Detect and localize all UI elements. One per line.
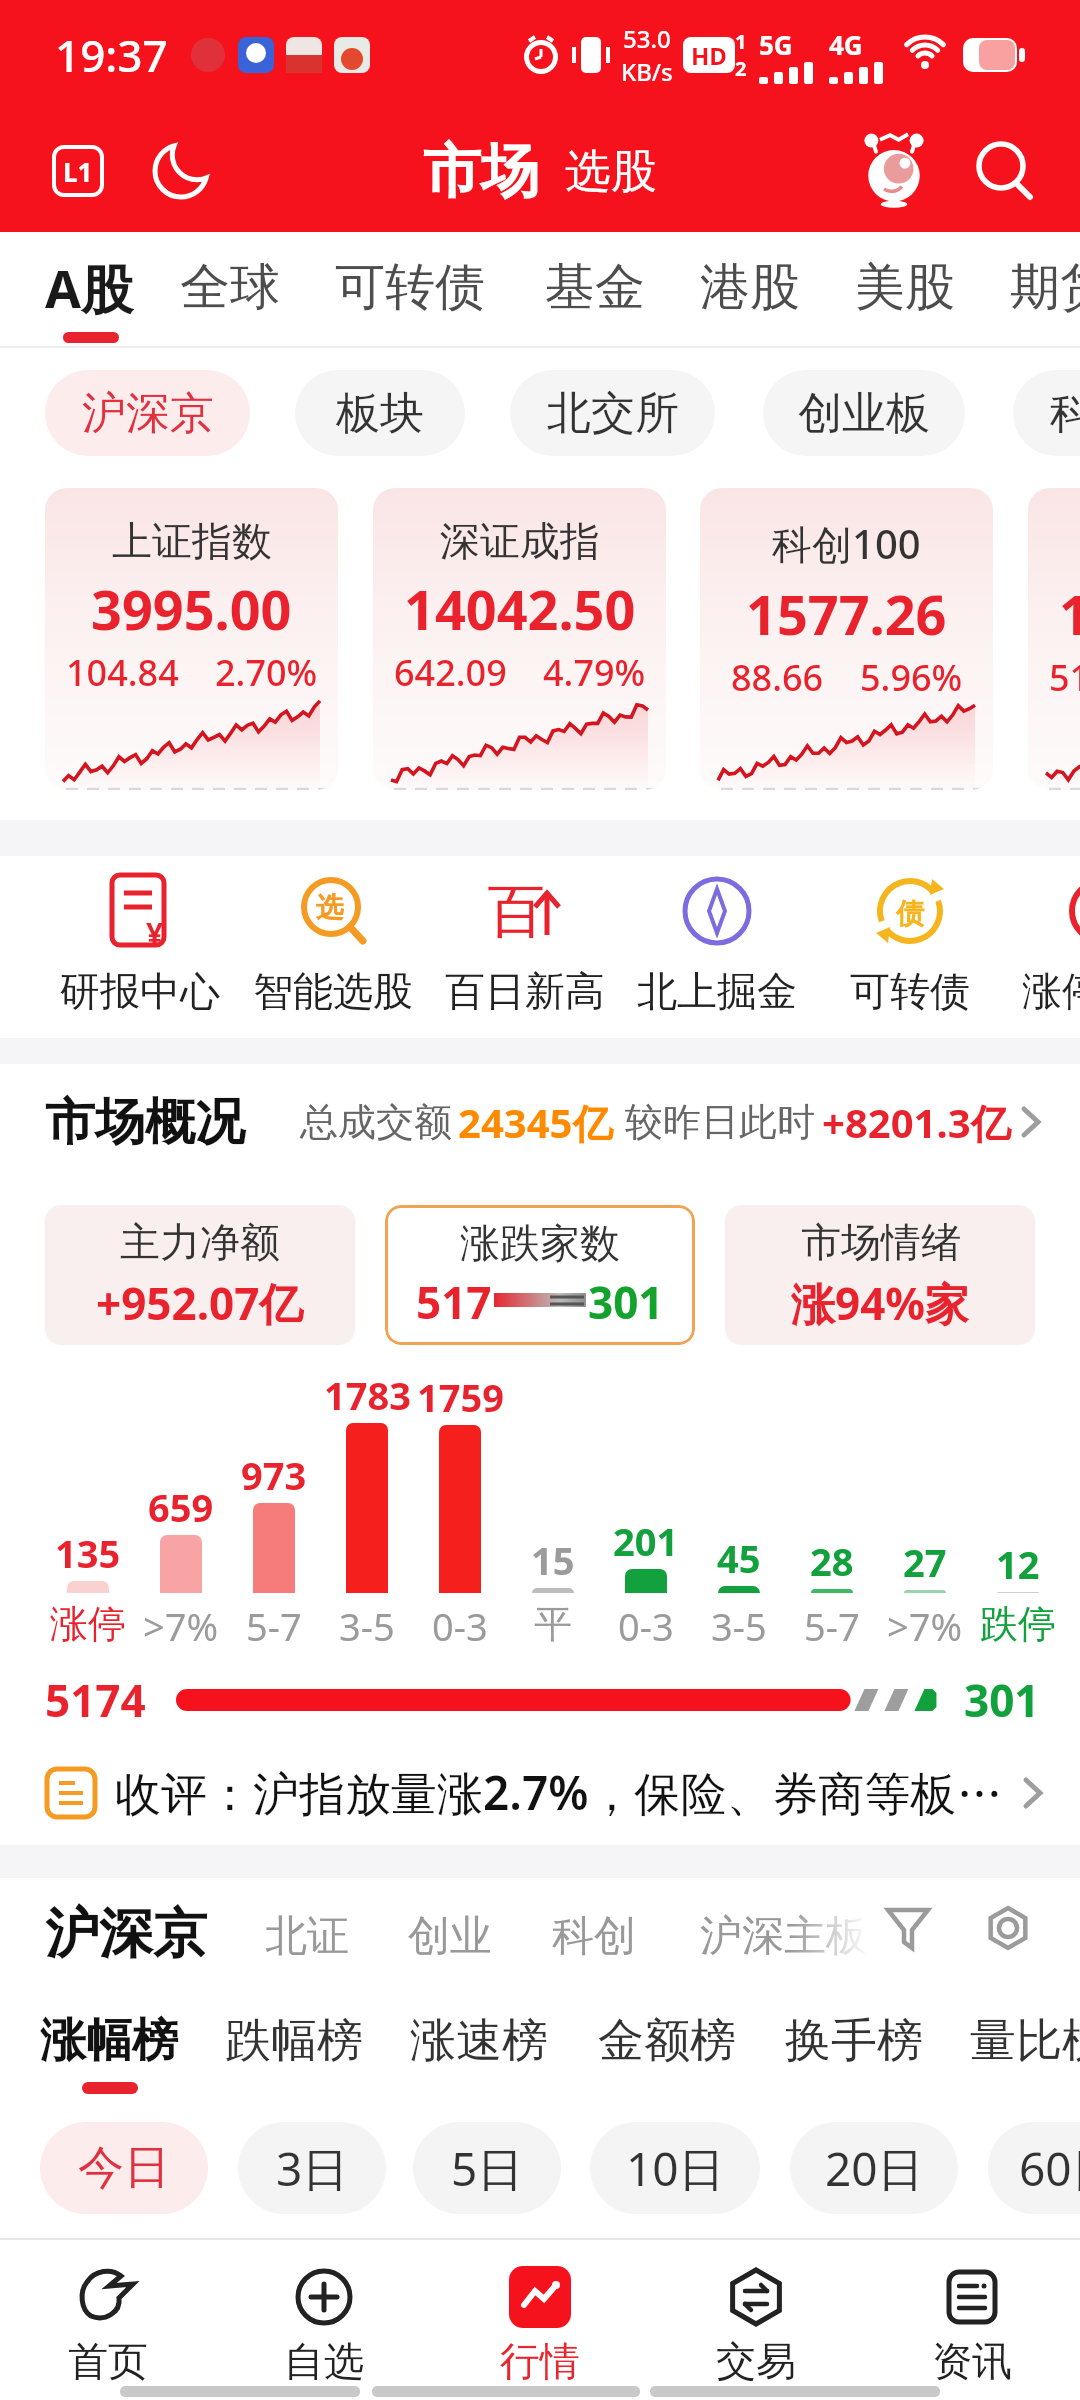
- button[interactable]: 涨幅榜: [40, 2012, 178, 2070]
- button[interactable]: 行情: [432, 2250, 648, 2400]
- button[interactable]: 沪深京: [45, 370, 250, 456]
- button[interactable]: 美股: [855, 232, 955, 342]
- button[interactable]: 金额榜: [598, 2012, 736, 2070]
- button[interactable]: [886, 1906, 930, 1950]
- button[interactable]: 交易: [648, 2250, 864, 2400]
- button[interactable]: 5日: [413, 2122, 561, 2214]
- button[interactable]: [973, 140, 1035, 202]
- staticText: 2.70%: [215, 648, 318, 697]
- button[interactable]: L1: [52, 145, 104, 197]
- button[interactable]: 基金: [545, 232, 645, 342]
- staticText: 主力净额: [120, 1217, 280, 1267]
- button[interactable]: 科创100: [700, 488, 993, 790]
- staticText: 创业板: [798, 386, 930, 441]
- button[interactable]: 北交所: [510, 370, 715, 456]
- button[interactable]: 期货: [1010, 232, 1080, 342]
- button[interactable]: 涨速榜: [410, 2012, 548, 2070]
- button[interactable]: 科创板: [1013, 370, 1080, 456]
- staticText: 3-5: [711, 1600, 767, 1652]
- staticText: 美股: [855, 256, 955, 319]
- button[interactable]: ¥: [44, 870, 236, 1016]
- button[interactable]: 跌幅榜: [225, 2012, 363, 2070]
- button[interactable]: 今日: [40, 2122, 208, 2214]
- staticText: 涨停雷达: [1022, 966, 1080, 1016]
- staticText: >7%: [143, 1600, 219, 1652]
- staticText: 行情: [500, 2336, 580, 2386]
- button[interactable]: 百: [429, 870, 621, 1016]
- button[interactable]: 60日: [988, 2122, 1080, 2214]
- staticText: 60日: [1019, 2137, 1080, 2200]
- button[interactable]: 主力净额: [45, 1205, 355, 1345]
- button[interactable]: 板块: [295, 370, 465, 456]
- button[interactable]: 换手榜: [785, 2012, 923, 2070]
- staticText: 10日: [626, 2137, 725, 2200]
- button[interactable]: 北上掘金: [621, 870, 813, 1016]
- button[interactable]: [986, 1906, 1030, 1950]
- staticText: 20日: [825, 2137, 924, 2200]
- staticText: +8201.3亿: [822, 1095, 1011, 1150]
- button[interactable]: 创业: [408, 1910, 492, 1963]
- button[interactable]: 资讯: [864, 2250, 1080, 2400]
- button[interactable]: 自选: [216, 2250, 432, 2400]
- button[interactable]: [152, 142, 210, 200]
- button[interactable]: 涨跌家数: [385, 1205, 695, 1345]
- button[interactable]: [1016, 1776, 1050, 1810]
- staticText: 135: [55, 1527, 121, 1579]
- staticText: 可转债: [335, 256, 485, 319]
- staticText: 可转债: [850, 966, 970, 1016]
- staticText: 4.79%: [543, 648, 646, 697]
- staticText: 3-5: [339, 1600, 395, 1652]
- button[interactable]: 收评：沪指放量涨2.7%，保险、券商等板块…: [45, 1740, 1050, 1845]
- staticText: 517: [416, 1272, 492, 1332]
- staticText: A股: [45, 252, 133, 323]
- button[interactable]: 3日: [238, 2122, 386, 2214]
- button[interactable]: 科创: [552, 1910, 636, 1963]
- button[interactable]: 沪深主板: [700, 1910, 868, 1963]
- staticText: 交易: [716, 2336, 796, 2386]
- staticText: 3995.00: [91, 572, 292, 646]
- button[interactable]: 北证: [265, 1910, 349, 1963]
- button[interactable]: 债: [814, 870, 1006, 1016]
- staticText: 总成交额: [300, 1098, 452, 1146]
- staticText: 301: [964, 1670, 1040, 1730]
- button[interactable]: 全球: [180, 232, 280, 342]
- button[interactable]: 量比榜: [970, 2012, 1080, 2070]
- staticText: 基金: [545, 256, 645, 319]
- button[interactable]: [1014, 1105, 1048, 1139]
- button[interactable]: 创业板: [763, 370, 965, 456]
- staticText: 0-3: [618, 1600, 674, 1652]
- button[interactable]: 上证指数: [45, 488, 338, 790]
- staticText: 科创板: [1050, 386, 1080, 441]
- staticText: 北交所: [547, 386, 679, 441]
- button[interactable]: 深证成指: [373, 488, 666, 790]
- button[interactable]: 中证1000: [1028, 488, 1080, 790]
- button[interactable]: 沪深京: [45, 1900, 207, 1968]
- staticText: 跌停: [980, 1600, 1056, 1648]
- button[interactable]: 市场: [423, 135, 539, 208]
- button[interactable]: A股: [45, 232, 133, 342]
- staticText: 15: [531, 1534, 575, 1586]
- staticText: 1577.26: [746, 577, 947, 651]
- button[interactable]: 20日: [790, 2122, 958, 2214]
- staticText: 17035.21: [1059, 577, 1080, 651]
- staticText: 首页: [68, 2336, 148, 2386]
- button[interactable]: 选股: [565, 143, 657, 201]
- button[interactable]: [855, 132, 933, 210]
- staticText: 1: [735, 28, 747, 55]
- button[interactable]: 可转债: [335, 232, 485, 342]
- staticText: 24345亿: [458, 1095, 613, 1150]
- staticText: 资讯: [932, 2336, 1012, 2386]
- staticText: L1: [63, 154, 93, 189]
- button[interactable]: 市场概况: [45, 1091, 245, 1154]
- button[interactable]: 选: [237, 870, 429, 1016]
- staticText: 53.0: [623, 22, 671, 55]
- staticText: 较昨日此时: [625, 1098, 815, 1146]
- staticText: 涨跌家数: [460, 1218, 620, 1268]
- button[interactable]: 首页: [0, 2250, 216, 2400]
- staticText: 研报中心: [60, 966, 220, 1016]
- button[interactable]: 10日: [590, 2122, 760, 2214]
- button[interactable]: 港股: [700, 232, 800, 342]
- button[interactable]: 涨停雷达: [1006, 870, 1080, 1016]
- staticText: 涨停: [50, 1600, 126, 1648]
- button[interactable]: 市场情绪: [725, 1205, 1035, 1345]
